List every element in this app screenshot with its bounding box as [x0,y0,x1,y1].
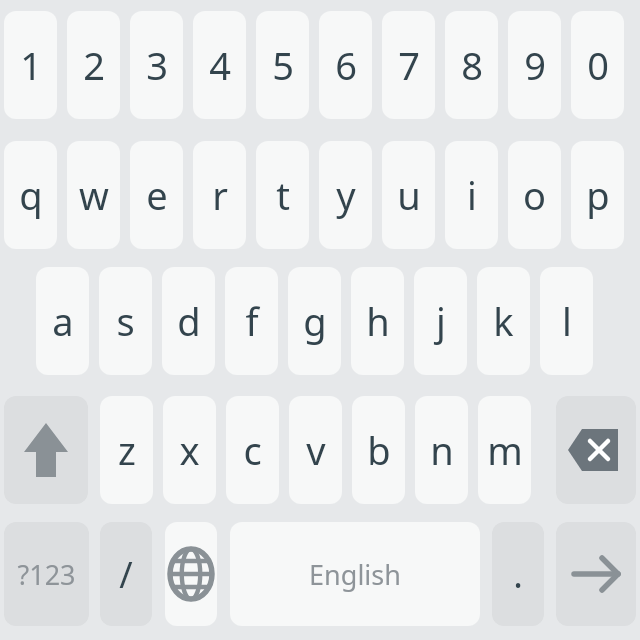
staticText: 6 [335,39,357,91]
button[interactable]: z [100,396,153,504]
button[interactable]: 5 [256,11,309,119]
button[interactable]: 7 [382,11,435,119]
button[interactable]: a [36,267,89,375]
button[interactable]: g [288,267,341,375]
staticText: b [367,424,391,476]
staticText: 7 [398,39,420,91]
button[interactable]: Backspace [556,396,636,504]
button[interactable]: k [477,267,530,375]
staticText: English [309,556,401,593]
staticText: 8 [461,39,483,91]
button[interactable]: p [571,141,624,249]
button[interactable]: n [415,396,468,504]
staticText: s [116,295,135,347]
staticText: 1 [20,39,42,91]
staticText: f [245,295,259,347]
button[interactable]: v [289,396,342,504]
staticText: 4 [209,39,231,91]
staticText: 9 [524,39,546,91]
staticText: c [243,424,262,476]
button[interactable]: 9 [508,11,561,119]
staticText: u [397,169,421,221]
staticText: m [487,424,523,476]
staticText: d [177,295,201,347]
button[interactable]: l [540,267,593,375]
button[interactable]: t [256,141,309,249]
button[interactable]: s [99,267,152,375]
button[interactable]: 4 [193,11,246,119]
staticText: 2 [83,39,105,91]
staticText: y [336,169,356,221]
button[interactable]: Enter [556,522,636,626]
staticText: / [119,550,133,599]
button[interactable]: b [352,396,405,504]
staticText: o [523,169,546,221]
staticText: i [467,169,477,221]
button[interactable]: English [230,522,480,626]
staticText: 5 [272,39,294,91]
button[interactable]: 6 [319,11,372,119]
staticText: g [303,295,327,347]
staticText: ?123 [17,556,76,593]
button[interactable]: 1 [4,11,57,119]
button[interactable]: w [67,141,120,249]
button[interactable]: 3 [130,11,183,119]
staticText: t [276,169,290,221]
button[interactable]: j [414,267,467,375]
button[interactable]: f [225,267,278,375]
button[interactable]: r [193,141,246,249]
staticText: l [562,295,572,347]
staticText: v [306,424,326,476]
staticText: 3 [146,39,168,91]
button[interactable]: e [130,141,183,249]
button[interactable]: Shift [4,396,88,504]
button[interactable]: . [492,522,544,626]
button[interactable]: 8 [445,11,498,119]
button[interactable]: i [445,141,498,249]
staticText: 0 [587,39,609,91]
staticText: x [179,424,200,476]
button[interactable]: q [4,141,57,249]
staticText: . [513,550,523,599]
staticText: k [493,295,514,347]
button[interactable]: u [382,141,435,249]
button[interactable]: y [319,141,372,249]
button[interactable]: 2 [67,11,120,119]
staticText: j [436,295,446,347]
button[interactable]: c [226,396,279,504]
button[interactable]: 0 [571,11,624,119]
staticText: q [19,169,43,221]
staticText: e [146,169,168,221]
staticText: r [212,169,228,221]
staticText: h [366,295,390,347]
button[interactable]: d [162,267,215,375]
staticText: a [52,295,74,347]
button[interactable]: ?123 [4,522,89,626]
button[interactable]: x [163,396,216,504]
button[interactable]: m [478,396,531,504]
staticText: n [430,424,454,476]
button[interactable]: h [351,267,404,375]
button[interactable]: o [508,141,561,249]
staticText: z [118,424,136,476]
staticText: w [79,169,109,221]
staticText: p [586,169,610,221]
button[interactable]: Change language [165,522,217,626]
button[interactable]: / [100,522,152,626]
